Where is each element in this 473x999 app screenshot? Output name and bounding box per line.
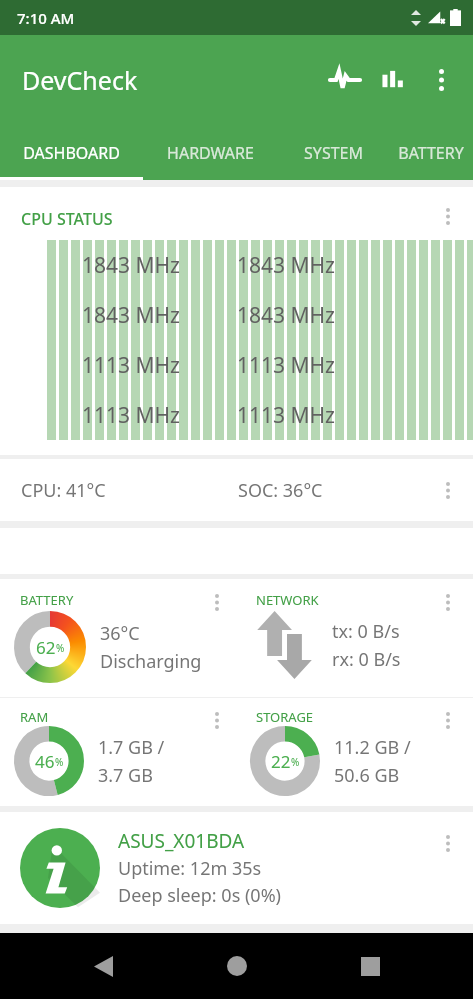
staticText: SOC: 36°C [238,478,323,503]
staticText: 36°C [100,621,140,646]
staticText: 50.6 GB [334,763,400,788]
staticText: 1843 MHz [237,251,335,280]
staticText: STORAGE [256,708,314,726]
button[interactable]: DASHBOARD [0,125,143,180]
staticText: 1.7 GB / [98,735,165,760]
staticText: 62 [36,636,56,659]
staticText: 1113 MHz [237,351,335,380]
button[interactable]: Statistics [369,56,417,104]
staticText: 11.2 GB / [334,735,411,760]
staticText: tx: 0 B/s [332,619,400,644]
button[interactable]: Monitoring [321,56,369,104]
staticText: HARDWARE [167,142,254,164]
button[interactable]: Home [207,936,267,996]
staticText: ASUS_X01BDA [118,828,245,854]
staticText: BATTERY [398,142,464,164]
button[interactable]: More options [200,703,234,737]
staticText: 1113 MHz [82,351,180,380]
staticText: CPU STATUS [21,208,113,230]
staticText: 1843 MHz [82,301,180,330]
staticText: SYSTEM [304,142,363,164]
button[interactable]: More options [431,703,465,737]
button[interactable]: HARDWARE [143,125,278,180]
staticText: 46 [35,750,55,773]
staticText: 3.7 GB [98,763,153,788]
button[interactable]: RAM [0,698,236,806]
button[interactable]: Recents [340,936,400,996]
staticText: rx: 0 B/s [332,647,401,672]
button[interactable]: BATTERY [0,579,236,697]
staticText: % [291,755,300,769]
staticText: 1113 MHz [82,401,180,430]
staticText: RAM [20,708,49,726]
button[interactable]: More options [200,585,234,619]
staticText: DevCheck [22,63,138,97]
staticText: 1113 MHz [237,401,335,430]
staticText: BATTERY [20,591,74,609]
staticText: 1843 MHz [237,301,335,330]
staticText: 7:10 AM [17,8,75,28]
button[interactable]: STORAGE [236,698,473,806]
button[interactable]: ASUS_X01BDA [0,812,473,924]
staticText: CPU: 41°C [21,478,106,503]
staticText: DASHBOARD [23,142,120,164]
staticText: Discharging [100,649,202,674]
staticText: NETWORK [256,591,319,609]
button[interactable]: More options [431,199,465,233]
staticText: Deep sleep: 0s (0%) [118,883,281,908]
button[interactable]: More options [417,56,465,104]
staticText: % [56,641,65,655]
button[interactable]: SYSTEM [278,125,388,180]
button[interactable]: More options [431,473,465,507]
staticText: % [55,755,64,769]
button[interactable]: BATTERY [388,125,473,180]
staticText: 1843 MHz [82,251,180,280]
button[interactable]: NETWORK [236,579,473,697]
staticText: Uptime: 12m 35s [118,856,262,881]
button[interactable]: More options [431,585,465,619]
button[interactable]: More options [431,826,465,860]
button[interactable]: Back [73,936,133,996]
staticText: 22 [271,750,291,773]
